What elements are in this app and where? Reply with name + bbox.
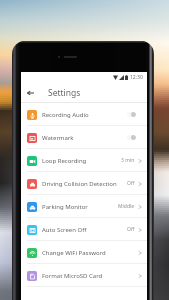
button[interactable]: Auto Screen Off (21, 218, 147, 241)
button[interactable]: Loop Recording (21, 149, 147, 172)
staticText: 3 min (121, 157, 135, 164)
staticText: Watermark (42, 134, 74, 142)
button[interactable]: Driving Collision Detection (21, 172, 147, 195)
button[interactable]: Watermark (21, 126, 147, 149)
button[interactable]: Format MicroSD Card (21, 264, 147, 287)
staticText: Off (127, 180, 135, 187)
staticText: Recording Audio (42, 111, 89, 119)
button[interactable]: Recording Audio (21, 103, 147, 126)
staticText: Format MicroSD Card (42, 272, 103, 280)
staticText: Auto Screen Off (42, 226, 87, 234)
staticText: Middle (118, 203, 135, 210)
button[interactable]: Change WiFi Password (21, 241, 147, 264)
staticText: Off (127, 226, 135, 233)
staticText: Change WiFi Password (42, 249, 106, 257)
button[interactable]: Back (21, 82, 40, 103)
staticText: Loop Recording (42, 157, 87, 165)
staticText: Driving Collision Detection (42, 180, 117, 188)
staticText: Settings (48, 87, 81, 99)
staticText: Parking Monitor (42, 203, 88, 211)
staticText: 12:30 (130, 74, 143, 81)
button[interactable]: Parking Monitor (21, 195, 147, 218)
